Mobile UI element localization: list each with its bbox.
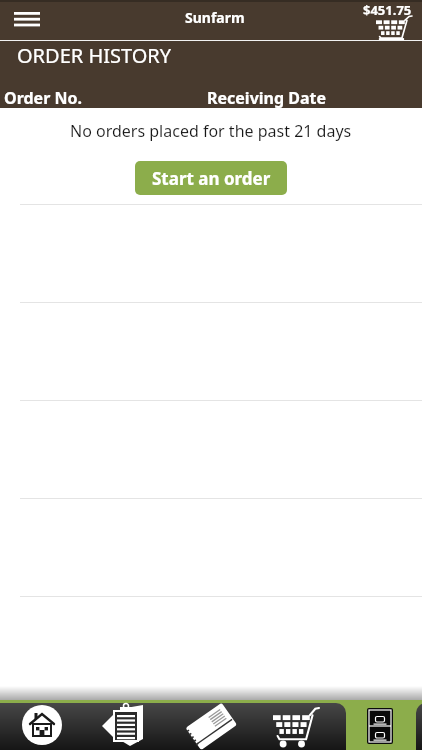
button[interactable]	[84, 700, 168, 750]
staticText: Start an order	[152, 167, 271, 190]
button[interactable]: Start an order	[135, 161, 287, 195]
staticText: $451.75	[363, 1, 412, 19]
button[interactable]	[169, 700, 253, 750]
button[interactable]	[338, 700, 422, 750]
button[interactable]	[10, 7, 44, 33]
staticText: Order No.	[4, 87, 82, 109]
staticText: No orders placed for the past 21 days	[70, 120, 352, 142]
staticText: Receiving Date	[207, 87, 327, 109]
button[interactable]	[253, 700, 337, 750]
button[interactable]	[374, 14, 414, 42]
staticText: Sunfarm	[185, 8, 245, 27]
staticText: ORDER HISTORY	[17, 42, 172, 69]
button[interactable]	[0, 700, 84, 750]
